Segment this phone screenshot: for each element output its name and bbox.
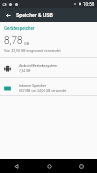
staticText: Interner Speicher [19, 84, 47, 88]
button[interactable]: Zurück [0, 159, 33, 173]
staticText: Gerätespeicher [4, 26, 35, 31]
staticText: 8,78 [4, 35, 23, 47]
staticText: 7,34 GB [19, 69, 31, 73]
button[interactable]: Android-Betriebssystem [0, 59, 97, 78]
staticText: Von 32,00 GB insgesamt verwendet [4, 49, 61, 53]
staticText: Android-Betriebssystem [19, 64, 58, 68]
button[interactable]: Interner Speicher [0, 80, 97, 97]
button[interactable]: Startbildschirm [33, 159, 65, 173]
button[interactable]: Zurück [0, 8, 16, 22]
staticText: 852 MB von 24,06 GB verwendet [19, 89, 67, 93]
button[interactable]: Letzte Apps [65, 159, 97, 173]
staticText: 10:58 [83, 2, 95, 7]
staticText: Speicher & USB [16, 12, 53, 18]
staticText: GB [24, 41, 30, 46]
